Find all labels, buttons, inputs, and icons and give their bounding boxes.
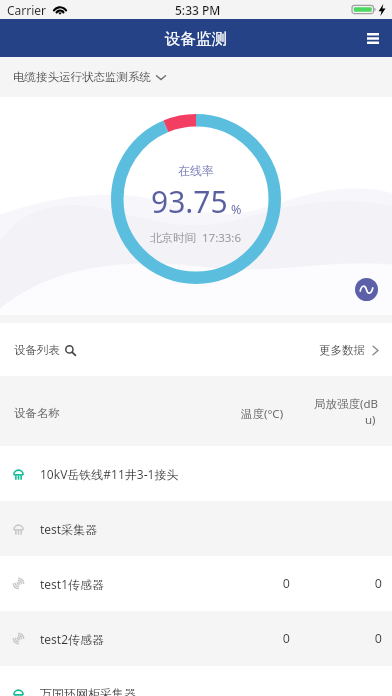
staticText: 5:33 PM: [175, 2, 221, 18]
staticText: 设备名称: [14, 406, 60, 420]
button[interactable]: 电缆接头运行状态监测系统: [0, 57, 392, 97]
staticText: 设备监测: [165, 29, 227, 49]
staticText: 万国环网柜采集器: [40, 686, 136, 696]
staticText: 设备列表: [14, 343, 60, 357]
staticText: 局放强度(dB: [314, 396, 378, 412]
staticText: u): [365, 412, 376, 428]
staticText: 电缆接头运行状态监测系统: [13, 70, 151, 84]
button[interactable]: 万国环网柜采集器: [0, 666, 392, 696]
button[interactable]: 10kV岳铁线#11井3-1接头: [0, 446, 392, 501]
button[interactable]: test1传感器: [0, 556, 392, 611]
button[interactable]: test采集器: [0, 501, 392, 556]
staticText: 0: [330, 630, 382, 647]
button[interactable]: 更多数据: [311, 335, 392, 365]
staticText: 温度(°C): [241, 406, 284, 422]
staticText: test1传感器: [40, 576, 105, 592]
staticText: 93.75: [151, 181, 228, 222]
staticText: 10kV岳铁线#11井3-1接头: [40, 466, 179, 482]
staticText: 在线率: [178, 163, 214, 178]
button[interactable]: 设备列表: [0, 335, 84, 365]
button[interactable]: test2传感器: [0, 611, 392, 666]
staticText: 0: [330, 575, 382, 592]
button[interactable]: Menu: [358, 19, 388, 57]
staticText: test2传感器: [40, 631, 105, 647]
staticText: Carrier: [7, 2, 47, 18]
staticText: 更多数据: [319, 343, 365, 357]
staticText: 0: [238, 575, 290, 592]
staticText: 北京时间 17:33:6: [150, 230, 242, 246]
staticText: test采集器: [40, 521, 98, 537]
staticText: %: [231, 201, 242, 218]
staticText: 0: [238, 630, 290, 647]
button[interactable]: Waveform: [355, 278, 378, 301]
